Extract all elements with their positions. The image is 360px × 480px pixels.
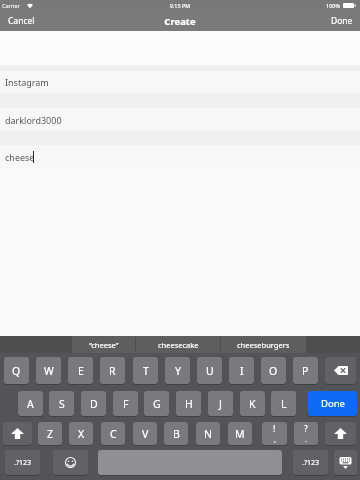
- staticText: !: [273, 423, 276, 435]
- staticText: X: [78, 427, 85, 441]
- button[interactable]: Done: [308, 391, 357, 416]
- staticText: C: [110, 427, 117, 441]
- button[interactable]: C: [101, 422, 125, 445]
- button[interactable]: cheeseburgers: [221, 336, 306, 353]
- staticText: P: [302, 364, 309, 378]
- button[interactable]: Y: [165, 357, 190, 384]
- staticText: Z: [47, 427, 54, 441]
- button[interactable]: A: [18, 391, 43, 416]
- staticText: M: [235, 427, 245, 441]
- button[interactable]: cheese: [0, 145, 360, 168]
- staticText: U: [206, 364, 214, 378]
- button[interactable]: !: [262, 422, 287, 445]
- staticText: F: [123, 397, 129, 411]
- staticText: W: [44, 364, 54, 378]
- button[interactable]: F: [113, 391, 138, 416]
- button[interactable]: cheesecake: [136, 336, 220, 353]
- button[interactable]: .?123: [293, 450, 328, 475]
- button[interactable]: K: [240, 391, 265, 416]
- button[interactable]: S: [49, 391, 74, 416]
- staticText: cheeseburgers: [237, 340, 290, 350]
- button[interactable]: I: [229, 357, 254, 384]
- staticText: ,: [274, 435, 276, 445]
- staticText: R: [109, 364, 116, 378]
- staticText: H: [185, 397, 193, 411]
- button[interactable]: G: [144, 391, 169, 416]
- staticText: cheese: [5, 151, 35, 163]
- button[interactable]: H: [176, 391, 201, 416]
- button[interactable]: [325, 422, 356, 445]
- staticText: “cheese”: [89, 340, 119, 350]
- button[interactable]: darklord3000: [0, 108, 360, 131]
- staticText: Create: [0, 15, 360, 28]
- button[interactable]: O: [261, 357, 286, 384]
- staticText: J: [219, 397, 222, 411]
- button[interactable]: V: [133, 422, 157, 445]
- button[interactable]: Instagram: [0, 71, 360, 93]
- button[interactable]: .?123: [5, 450, 40, 475]
- staticText: O: [269, 364, 278, 378]
- button[interactable]: Done: [315, 13, 360, 29]
- staticText: I: [240, 364, 244, 378]
- staticText: Done: [331, 15, 353, 27]
- button[interactable]: L: [271, 391, 296, 416]
- staticText: B: [173, 427, 180, 441]
- button[interactable]: E: [68, 357, 93, 384]
- staticText: S: [59, 397, 65, 411]
- staticText: D: [90, 397, 98, 411]
- button[interactable]: R: [100, 357, 125, 384]
- staticText: Carrier: [2, 2, 20, 9]
- button[interactable]: Z: [38, 422, 62, 445]
- staticText: E: [78, 364, 84, 378]
- staticText: Done: [321, 397, 345, 410]
- staticText: 100%: [326, 2, 341, 9]
- staticText: Cancel: [8, 15, 35, 27]
- button[interactable]: Q: [4, 357, 29, 384]
- staticText: Q: [12, 364, 21, 378]
- button[interactable]: [53, 450, 88, 475]
- staticText: .?123: [302, 458, 319, 468]
- button[interactable]: T: [133, 357, 158, 384]
- button[interactable]: W: [36, 357, 61, 384]
- staticText: N: [204, 427, 212, 441]
- button[interactable]: N: [196, 422, 220, 445]
- button[interactable]: J: [208, 391, 233, 416]
- button[interactable]: [325, 357, 356, 384]
- staticText: G: [153, 397, 161, 411]
- staticText: Y: [175, 364, 181, 378]
- button[interactable]: ?: [294, 422, 318, 445]
- staticText: darklord3000: [5, 114, 62, 126]
- staticText: V: [142, 427, 149, 441]
- staticText: cheesecake: [158, 340, 199, 350]
- staticText: T: [143, 364, 149, 378]
- button[interactable]: [334, 450, 357, 475]
- staticText: L: [281, 397, 287, 411]
- staticText: Instagram: [5, 76, 49, 88]
- button[interactable]: “cheese”: [72, 336, 135, 353]
- button[interactable]: Cancel: [0, 13, 50, 29]
- staticText: ?: [304, 423, 308, 435]
- button[interactable]: D: [81, 391, 106, 416]
- button[interactable]: B: [164, 422, 188, 445]
- button[interactable]: [3, 422, 32, 445]
- button[interactable]: P: [293, 357, 318, 384]
- button[interactable]: X: [69, 422, 93, 445]
- staticText: K: [249, 397, 256, 411]
- staticText: A: [27, 397, 34, 411]
- staticText: .?123: [14, 458, 31, 468]
- button[interactable]: U: [197, 357, 222, 384]
- button[interactable]: M: [228, 422, 252, 445]
- staticText: 9:15 PM: [0, 2, 360, 9]
- staticText: .: [305, 435, 307, 445]
